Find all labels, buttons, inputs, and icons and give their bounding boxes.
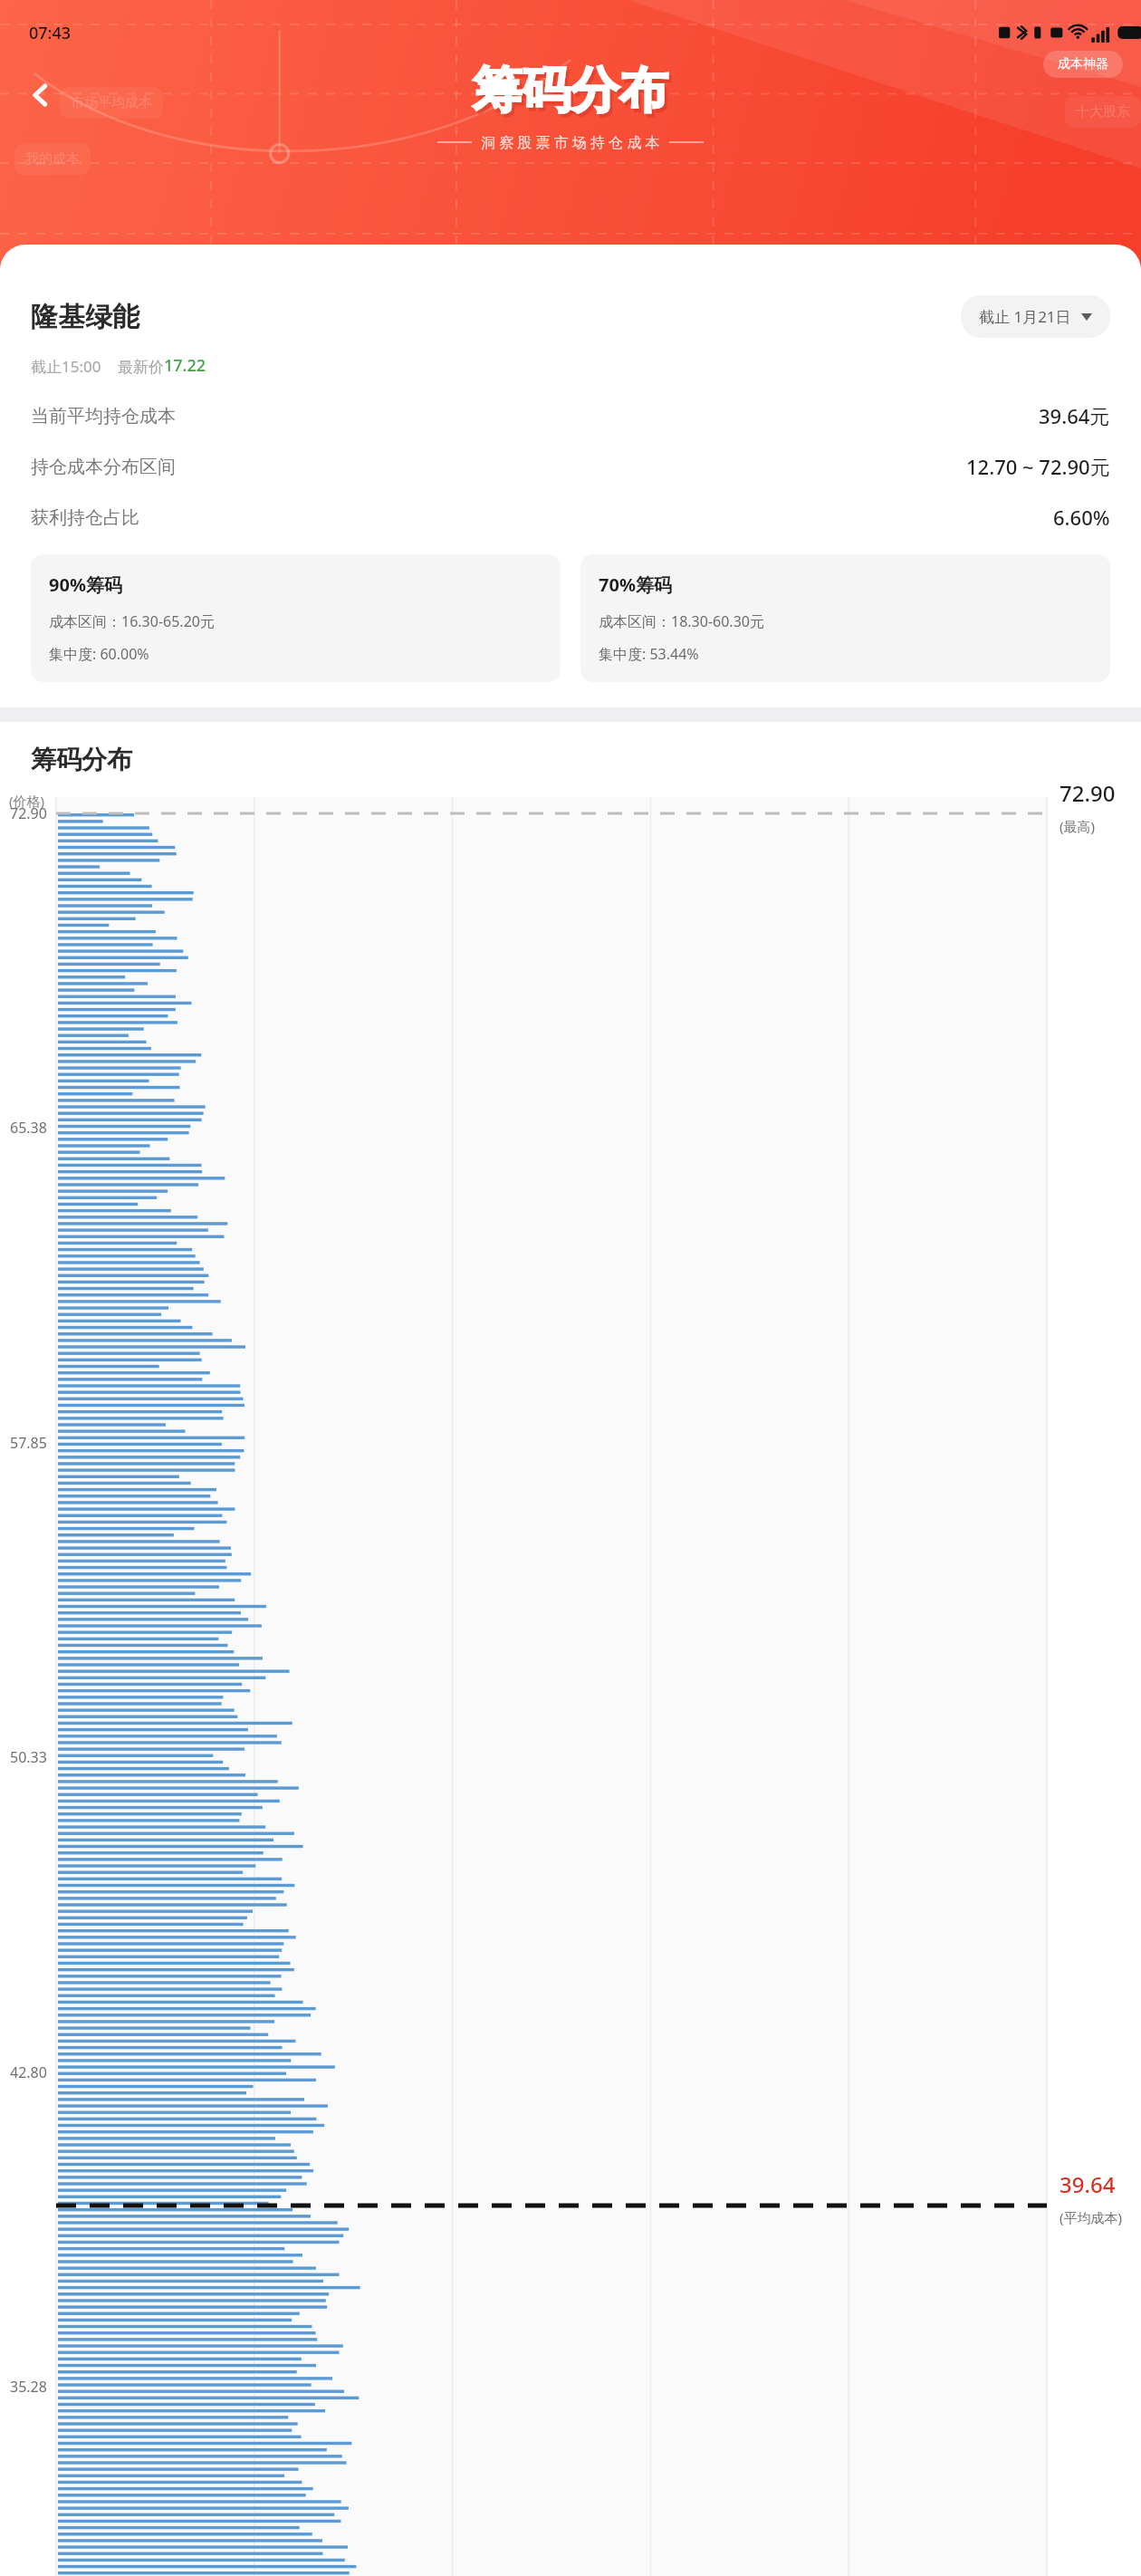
staticText: 筹码分布: [475, 63, 671, 125]
staticText: 70%筹码: [599, 572, 672, 597]
staticText: (最高): [1059, 817, 1096, 835]
staticText: 截止 1月21日: [979, 306, 1071, 327]
staticText: 17.22: [164, 354, 206, 377]
staticText: 42.80: [10, 2062, 47, 2082]
staticText: 成本神器: [1058, 56, 1108, 72]
staticText: 持仓成本分布区间: [31, 456, 176, 478]
staticText: 72.90: [10, 803, 47, 823]
staticText: 72.90: [1059, 778, 1116, 808]
staticText: (价格): [9, 792, 45, 810]
staticText: 90%筹码: [49, 572, 122, 597]
staticText: 隆基绿能: [31, 300, 139, 334]
staticText: 39.64元: [1039, 402, 1110, 429]
button[interactable]: 成本神器: [1043, 51, 1123, 78]
staticText: 成本区间：18.30-60.30元: [599, 611, 764, 631]
staticText: 十大股东: [1076, 103, 1130, 120]
staticText: 获利持仓占比: [31, 506, 139, 529]
staticText: 12.70 ~ 72.90元: [966, 453, 1110, 480]
staticText: 筹码分布: [31, 744, 132, 775]
staticText: 35.28: [10, 2377, 47, 2397]
staticText: 洞 察 股 票 市 场 持 仓 成 本: [481, 132, 660, 152]
staticText: 集中度: 60.00%: [49, 644, 149, 664]
staticText: 07:43: [29, 22, 72, 44]
staticText: (平均成本): [1059, 2208, 1123, 2226]
staticText: 筹码分布: [473, 60, 668, 121]
staticText: 39.64: [1059, 2169, 1116, 2199]
button[interactable]: 70%筹码: [580, 554, 1110, 682]
button[interactable]: Back: [16, 71, 65, 120]
staticText: 市场平均成本: [71, 94, 152, 111]
staticText: 57.85: [10, 1433, 47, 1453]
staticText: 我的成本: [25, 150, 80, 168]
staticText: 最新价: [118, 358, 164, 377]
staticText: 50.33: [10, 1747, 47, 1767]
staticText: 65.38: [10, 1118, 47, 1138]
button[interactable]: 90%筹码: [31, 554, 561, 682]
staticText: 成本区间：16.30-65.20元: [49, 611, 215, 631]
staticText: 截止15:00: [31, 356, 101, 377]
staticText: 当前平均持仓成本: [31, 405, 176, 428]
button[interactable]: 截止 1月21日: [961, 295, 1110, 338]
staticText: 6.60%: [1053, 504, 1110, 531]
staticText: 集中度: 53.44%: [599, 644, 699, 664]
